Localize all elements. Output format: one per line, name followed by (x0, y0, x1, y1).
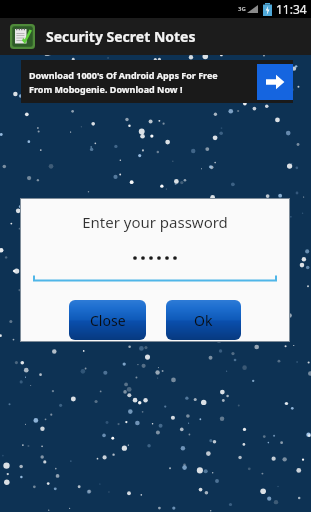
button[interactable]: Ok (166, 300, 241, 340)
staticText: From Mobogenie. Download Now ! (29, 83, 183, 95)
staticText: Security Secret Notes (46, 27, 196, 46)
staticText: Close (90, 311, 126, 330)
button[interactable]: Advertisement (21, 60, 293, 103)
staticText: Ok (194, 311, 213, 330)
staticText: Enter your password (82, 212, 228, 232)
button[interactable]: Open ad (257, 64, 293, 100)
staticText: 11:34 (276, 1, 307, 17)
staticText: Download 1000's Of Android Apps For Free (29, 69, 218, 81)
staticText: 3G (238, 5, 246, 13)
button[interactable]: Password field (33, 254, 277, 282)
button[interactable]: Close (69, 300, 146, 340)
